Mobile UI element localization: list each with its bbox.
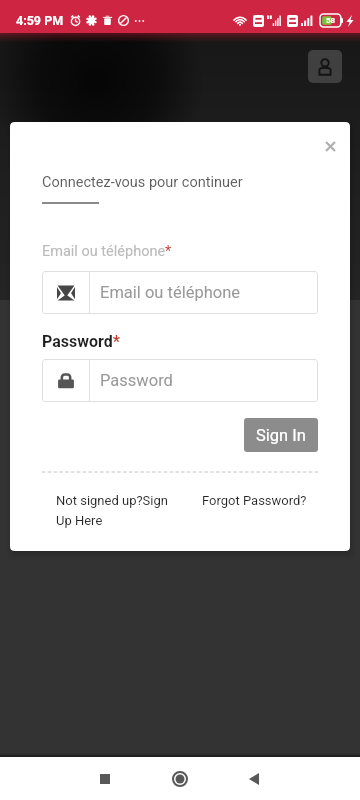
staticText: Forgot Password? bbox=[202, 493, 307, 508]
button[interactable]: Sign In bbox=[244, 418, 318, 452]
button[interactable]: Account bbox=[308, 50, 342, 83]
button[interactable]: Recent apps bbox=[81, 757, 129, 800]
button[interactable]: Forgot Password? bbox=[202, 493, 307, 508]
button[interactable]: Email ou téléphone bbox=[42, 271, 318, 314]
staticText: Password* bbox=[42, 332, 120, 351]
staticText: Connectez-vous pour continuer bbox=[42, 174, 243, 191]
staticText: 58 bbox=[326, 16, 336, 25]
button[interactable]: Not signed up?Sign Up Here bbox=[56, 493, 174, 528]
button[interactable]: Back bbox=[230, 757, 278, 800]
staticText: 4:59 PM bbox=[16, 13, 64, 28]
staticText: Sign In bbox=[256, 426, 306, 445]
staticText: Email ou téléphone* bbox=[42, 243, 172, 260]
button[interactable]: Home bbox=[156, 757, 204, 800]
button[interactable]: Password bbox=[42, 359, 318, 402]
staticText: Password bbox=[100, 371, 173, 390]
staticText: Email ou téléphone bbox=[100, 283, 241, 302]
staticText: Not signed up?Sign Up Here bbox=[56, 493, 174, 528]
button[interactable]: Close bbox=[318, 134, 342, 158]
